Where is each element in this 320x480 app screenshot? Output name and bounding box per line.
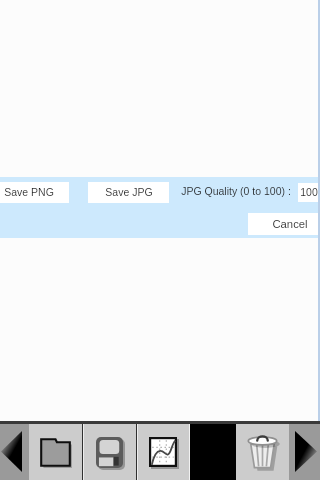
staticText: Save PNG [4, 186, 54, 198]
button[interactable]: Save PNG [0, 182, 69, 203]
staticText: Cancel [272, 218, 308, 231]
button[interactable]: Next [289, 424, 320, 480]
button[interactable]: Delete [236, 424, 289, 480]
button[interactable]: Previous [0, 424, 29, 480]
button[interactable]: Plot [136, 424, 190, 480]
button[interactable]: Save JPG [88, 182, 169, 203]
staticText: 100 [300, 186, 318, 198]
staticText: JPG Quality (0 to 100) : [181, 185, 291, 197]
button[interactable]: Cancel [248, 213, 320, 235]
button[interactable]: 100 [298, 183, 320, 202]
button[interactable]: Save [82, 424, 136, 480]
button[interactable]: Open [29, 424, 82, 480]
staticText: Save JPG [105, 186, 153, 198]
